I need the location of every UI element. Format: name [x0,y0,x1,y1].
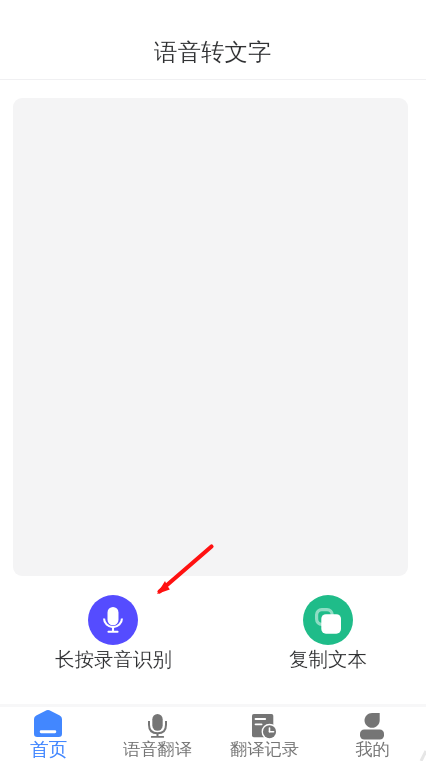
staticText: 长按录音识别 [55,647,172,672]
other: 首页 [34,709,62,737]
staticText: 首页 [30,738,67,761]
button[interactable]: 长按录音识别 [53,595,173,672]
other: 翻译记录 [252,714,276,738]
staticText: 语音转文字 [154,37,272,67]
button[interactable]: 首页 [0,706,98,761]
button[interactable]: 复制文本 [228,595,426,672]
button[interactable]: 语音翻译 [107,706,207,761]
staticText: 我的 [355,738,390,760]
staticText: 语音翻译 [123,738,192,760]
staticText: 翻译记录 [230,738,299,760]
button[interactable]: 我的 [322,706,422,761]
other: 我的 [360,713,384,740]
button[interactable]: 翻译记录 [214,706,314,761]
other: 语音翻译 [148,714,167,738]
staticText: 复制文本 [289,647,367,672]
